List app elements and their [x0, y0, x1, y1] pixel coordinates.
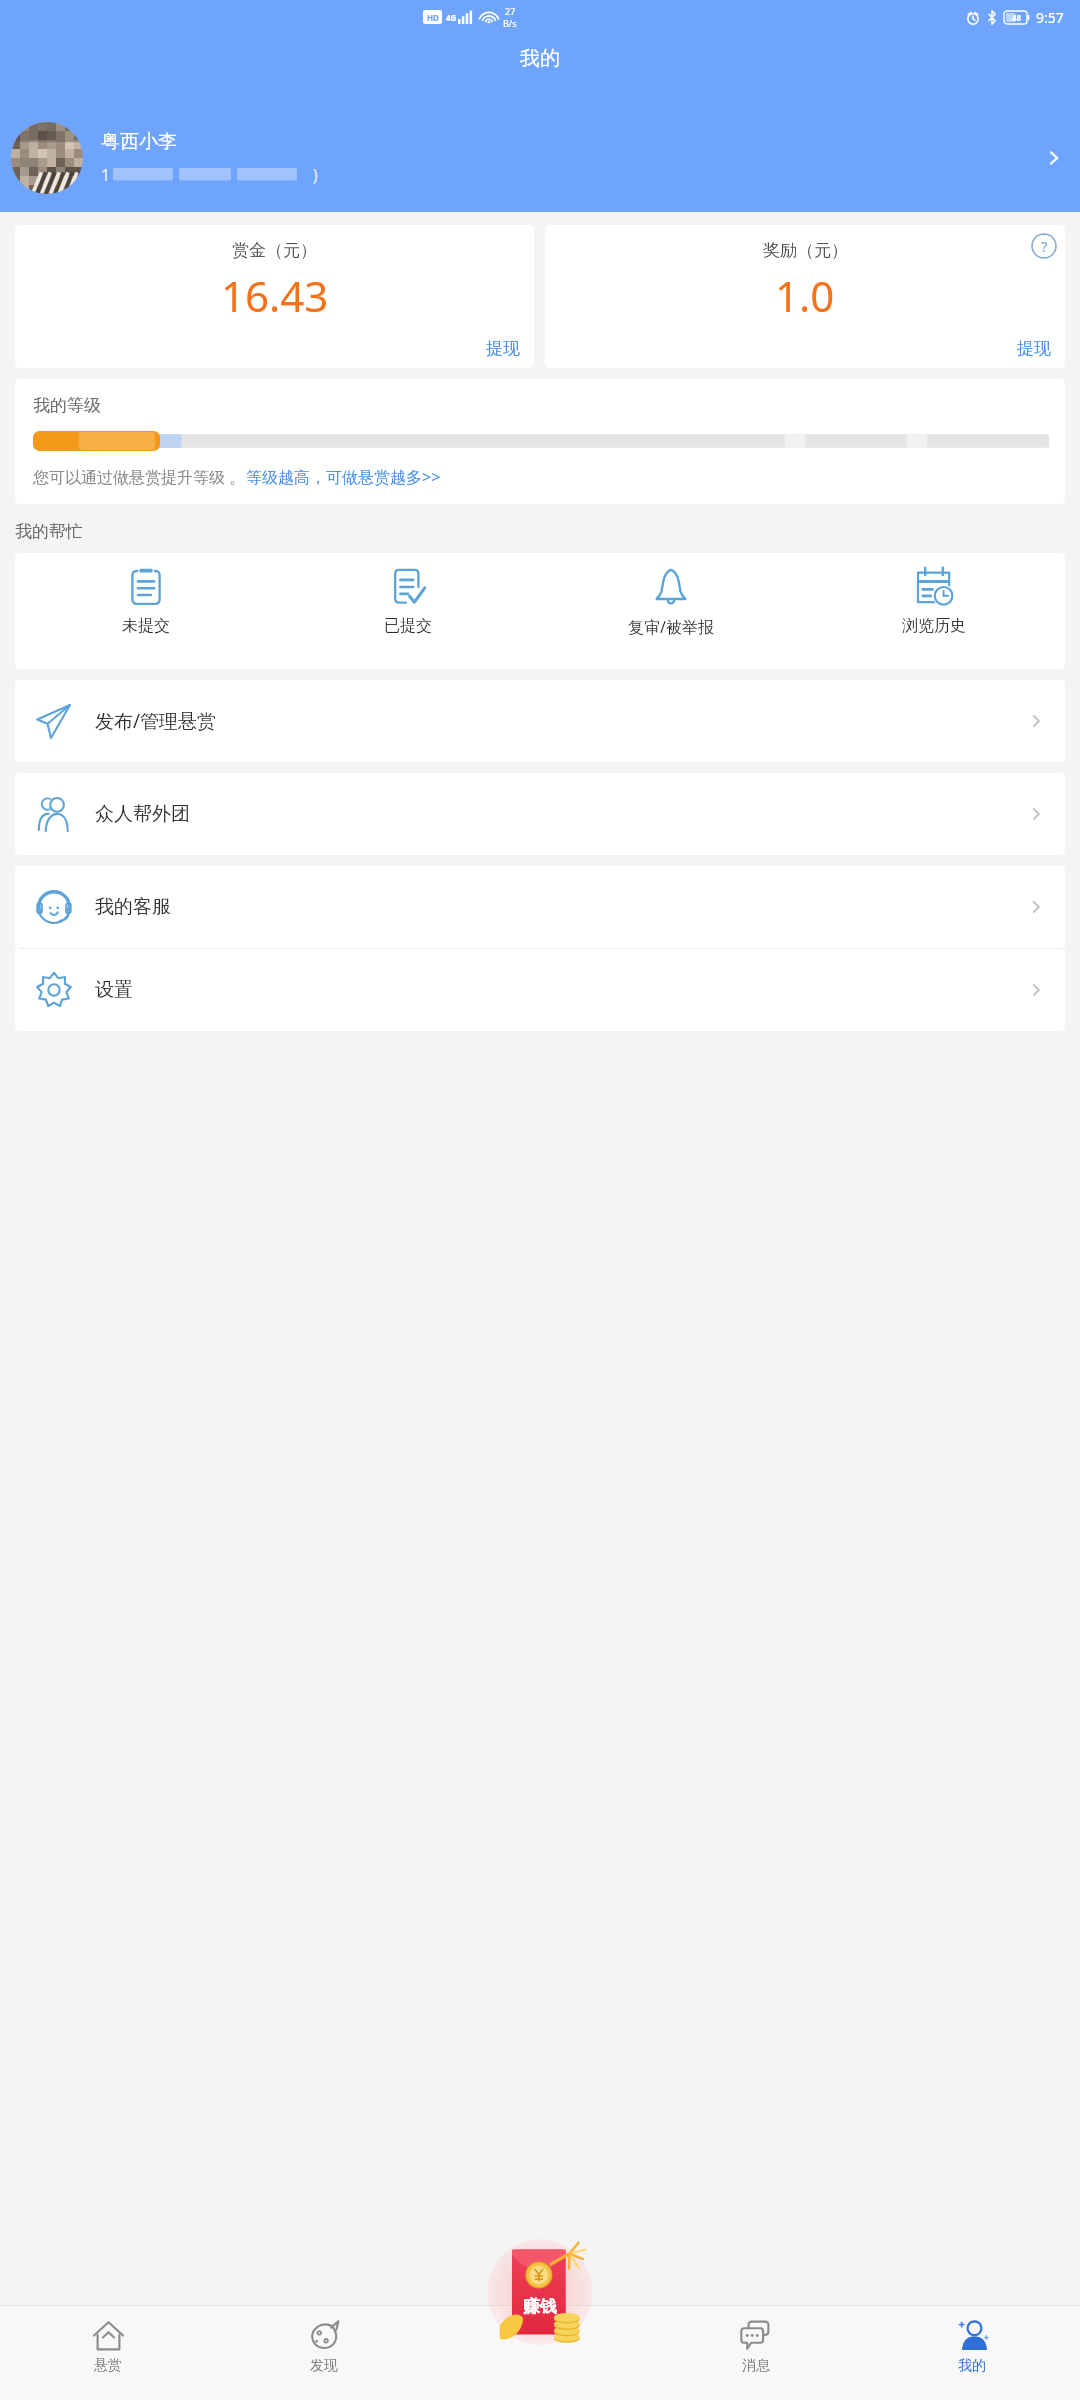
- staticText: 消息: [742, 2357, 770, 2375]
- staticText: 我的等级: [33, 395, 101, 416]
- staticText: ?: [1041, 236, 1048, 256]
- button[interactable]: 消息: [648, 2306, 864, 2400]
- staticText: B/s: [503, 17, 517, 29]
- button[interactable]: 设置: [15, 949, 1065, 1031]
- button[interactable]: 等级越高，可做悬赏越多>>: [246, 466, 441, 488]
- button[interactable]: 我的等级: [15, 379, 1065, 504]
- staticText: 赚钱: [523, 2296, 557, 2317]
- staticText: 悬赏: [94, 2357, 122, 2375]
- button[interactable]: 提现: [486, 338, 534, 368]
- staticText: 16.43: [221, 267, 329, 324]
- staticText: 赏金（元）: [232, 240, 317, 261]
- staticText: 4G: [446, 12, 457, 23]
- staticText: 我的客服: [95, 895, 1027, 919]
- staticText: 未提交: [122, 616, 170, 636]
- button[interactable]: 我的: [864, 2306, 1080, 2400]
- staticText: 设置: [95, 978, 1027, 1002]
- staticText: 已提交: [384, 616, 432, 636]
- button[interactable]: 发布/管理悬赏: [15, 680, 1065, 762]
- button[interactable]: 复审/被举报: [539, 553, 802, 669]
- button[interactable]: 粤西小李: [0, 104, 1080, 212]
- staticText: 我的: [958, 2357, 986, 2375]
- button[interactable]: 我的客服: [15, 866, 1065, 948]
- button[interactable]: 众人帮外团: [15, 773, 1065, 855]
- button[interactable]: 未提交: [15, 553, 277, 669]
- staticText: 粤西小李: [101, 130, 177, 154]
- staticText: HD: [427, 12, 439, 23]
- staticText: 1.0: [775, 267, 835, 324]
- staticText: 27: [505, 5, 516, 17]
- staticText: 您可以通过做悬赏提升等级 。: [33, 466, 246, 488]
- button[interactable]: 提现: [1017, 338, 1065, 368]
- staticText: 1: [101, 164, 111, 186]
- button[interactable]: 赏金（元）: [15, 225, 534, 368]
- staticText: 奖励（元）: [763, 240, 848, 261]
- staticText: 我的帮忙: [15, 521, 83, 542]
- staticText: 众人帮外团: [95, 802, 1027, 826]
- staticText: 我的: [520, 46, 560, 71]
- staticText: 复审/被举报: [628, 616, 714, 638]
- button[interactable]: 帮助: [1031, 233, 1057, 259]
- staticText: 发现: [310, 2357, 338, 2375]
- button[interactable]: 浏览历史: [802, 553, 1065, 669]
- button[interactable]: 悬赏: [0, 2306, 216, 2400]
- button[interactable]: 奖励（元）: [545, 225, 1065, 368]
- button[interactable]: 已提交: [277, 553, 539, 669]
- staticText: ): [313, 164, 318, 186]
- staticText: 浏览历史: [902, 616, 966, 636]
- button[interactable]: 发现: [216, 2306, 432, 2400]
- staticText: 发布/管理悬赏: [95, 708, 1027, 734]
- staticText: 9:57: [1036, 8, 1064, 27]
- button[interactable]: 赚钱: [484, 2236, 596, 2348]
- staticText: 48: [1012, 12, 1022, 23]
